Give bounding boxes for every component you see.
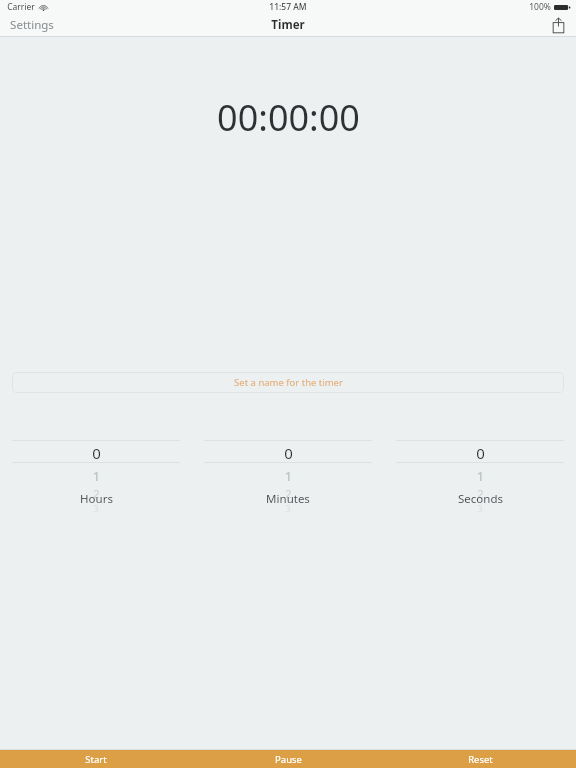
staticText: 0: [476, 443, 485, 463]
staticText: 3: [285, 502, 291, 514]
staticText: 0: [92, 443, 101, 463]
button[interactable]: Settings: [0, 14, 64, 36]
staticText: 100%: [529, 1, 551, 13]
staticText: Carrier: [7, 1, 35, 13]
staticText: Minutes: [266, 491, 310, 507]
button[interactable]: Pause: [192, 750, 384, 768]
staticText: 0: [284, 443, 293, 463]
staticText: Settings: [10, 17, 54, 33]
staticText: 00:00:00: [217, 93, 360, 142]
button[interactable]: Reset: [384, 750, 576, 768]
button[interactable]: Share: [541, 14, 576, 36]
staticText: 2: [93, 486, 100, 501]
staticText: Set a name for the timer: [234, 376, 343, 389]
staticText: 11:57 AM: [269, 1, 307, 13]
staticText: Start: [85, 753, 107, 766]
button[interactable]: 0: [384, 433, 576, 515]
staticText: 1: [477, 468, 484, 484]
button[interactable]: 0: [192, 433, 384, 515]
staticText: 2: [285, 486, 292, 501]
staticText: Reset: [468, 753, 493, 766]
staticText: 1: [93, 468, 100, 484]
staticText: Pause: [275, 753, 302, 766]
button[interactable]: Set a name for the timer: [12, 372, 564, 393]
staticText: 2: [477, 486, 484, 501]
staticText: Seconds: [458, 491, 503, 507]
staticText: 1: [285, 468, 292, 484]
staticText: 3: [93, 502, 99, 514]
button[interactable]: 0: [0, 433, 192, 515]
button[interactable]: Start: [0, 750, 192, 768]
staticText: Hours: [80, 491, 113, 507]
staticText: Timer: [271, 17, 305, 33]
staticText: 3: [477, 502, 483, 514]
